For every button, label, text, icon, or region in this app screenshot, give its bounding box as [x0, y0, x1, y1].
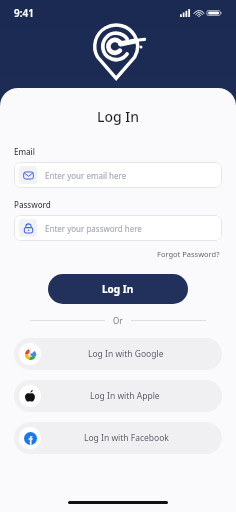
button[interactable]: Log In with Facebook [14, 422, 222, 454]
staticText: Log In [97, 107, 140, 126]
button[interactable]: Enter your email here [14, 162, 222, 188]
staticText: Enter your email here [45, 170, 127, 181]
staticText: Log In with Apple [90, 390, 160, 402]
button[interactable]: Enter your password here [14, 215, 222, 241]
staticText: Log In with Google [88, 348, 164, 360]
other: App logo [87, 24, 149, 80]
button[interactable]: Log In with Google [14, 338, 222, 370]
staticText: Password [14, 199, 51, 210]
staticText: Enter your password here [45, 223, 142, 234]
staticText: Forgot Password? [157, 249, 220, 259]
staticText: Email [14, 146, 35, 157]
button[interactable]: Forgot Password? [155, 247, 222, 261]
staticText: 9:41 [14, 6, 34, 20]
button[interactable]: Log In with Apple [14, 380, 222, 412]
staticText: Log In [102, 282, 134, 296]
button[interactable]: Log In [48, 274, 188, 304]
staticText: Or [113, 315, 123, 326]
staticText: Log In with Facebook [84, 432, 169, 444]
